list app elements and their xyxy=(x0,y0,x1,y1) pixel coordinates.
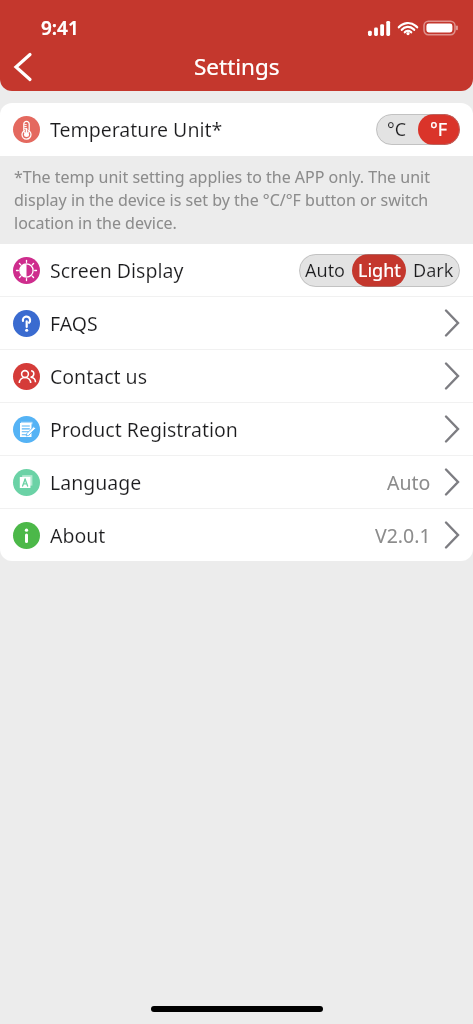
staticText: °C xyxy=(387,117,407,142)
button[interactable]: Back xyxy=(2,46,44,88)
staticText: Light xyxy=(358,258,401,283)
staticText: Temperature Unit* xyxy=(50,116,223,143)
staticText: Language xyxy=(50,469,142,496)
staticText: *The temp unit setting applies to the AP… xyxy=(14,166,463,234)
button[interactable]: °C xyxy=(376,114,460,145)
button[interactable]: FAQS xyxy=(0,297,473,349)
staticText: Dark xyxy=(413,258,454,283)
button[interactable]: Temperature Unit* xyxy=(0,103,473,156)
staticText: Settings xyxy=(194,51,280,82)
button[interactable]: Open xyxy=(440,467,460,497)
staticText: About xyxy=(50,522,106,549)
staticText: V2.0.1 xyxy=(375,522,431,549)
button[interactable]: Open xyxy=(440,361,460,391)
button[interactable]: Open xyxy=(440,414,460,444)
button[interactable]: Product Registration xyxy=(0,403,473,455)
button[interactable]: Contact us xyxy=(0,350,473,402)
button[interactable]: Language xyxy=(0,456,473,508)
staticText: Product Registration xyxy=(50,416,238,443)
button[interactable]: Screen Display xyxy=(0,244,473,296)
staticText: FAQS xyxy=(50,310,98,337)
button[interactable]: Open xyxy=(440,520,460,550)
button[interactable]: Open xyxy=(440,308,460,338)
staticText: Screen Display xyxy=(50,257,184,284)
button[interactable]: About xyxy=(0,509,473,561)
staticText: Auto xyxy=(387,469,431,496)
button[interactable]: Auto xyxy=(299,254,460,287)
staticText: °F xyxy=(430,117,448,142)
staticText: 9:41 xyxy=(41,15,79,41)
staticText: Contact us xyxy=(50,363,148,390)
staticText: Auto xyxy=(305,258,346,283)
